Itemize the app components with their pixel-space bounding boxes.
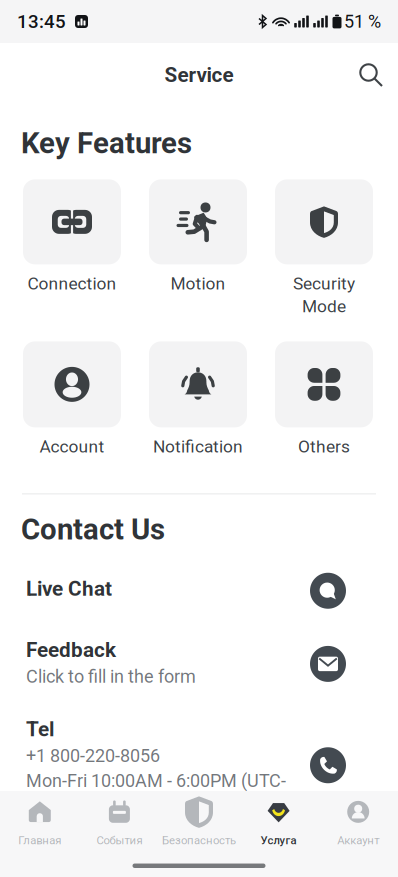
staticText: Услуга <box>261 834 297 847</box>
staticText: Service <box>164 63 233 87</box>
button[interactable]: Motion <box>149 179 247 341</box>
staticText: Contact Us <box>21 512 165 547</box>
staticText: Click to fill in the form <box>26 666 196 687</box>
button[interactable]: Account <box>23 341 121 457</box>
button[interactable]: Безопасность <box>159 791 239 846</box>
staticText: Notification <box>153 436 243 457</box>
staticText: Account <box>39 436 104 457</box>
button[interactable]: События <box>80 791 159 846</box>
button[interactable]: Услуга <box>239 791 318 846</box>
staticText: Key Features <box>21 126 192 160</box>
button[interactable]: Security <box>275 179 373 341</box>
button[interactable]: Search <box>344 50 398 100</box>
staticText: События <box>96 834 142 847</box>
staticText: Motion <box>170 273 225 294</box>
staticText: Главная <box>18 834 61 847</box>
staticText: 51 % <box>344 11 381 32</box>
staticText: Others <box>298 436 350 457</box>
button[interactable]: Others <box>275 341 373 457</box>
button[interactable]: Tel <box>0 703 398 799</box>
button[interactable]: Аккаунт <box>318 791 398 846</box>
button[interactable]: Connection <box>23 179 121 341</box>
button[interactable]: Live Chat <box>0 561 398 627</box>
button[interactable]: Notification <box>149 341 247 457</box>
staticText: Tel <box>26 717 54 741</box>
staticText: Live Chat <box>26 577 112 601</box>
staticText: Connection <box>27 273 116 294</box>
button[interactable]: Главная <box>0 791 80 846</box>
staticText: Mon-Fri 10:00AM - 6:00PM (UTC- <box>26 770 286 791</box>
staticText: Feedback <box>26 638 116 662</box>
staticText: Аккаунт <box>337 834 379 847</box>
staticText: +1 800-220-8056 <box>26 745 160 766</box>
button[interactable]: Feedback <box>0 627 398 703</box>
staticText: Безопасность <box>162 834 236 847</box>
staticText: 13:45 <box>17 11 66 32</box>
staticText: Mode <box>302 296 346 316</box>
staticText: Security <box>293 273 355 294</box>
